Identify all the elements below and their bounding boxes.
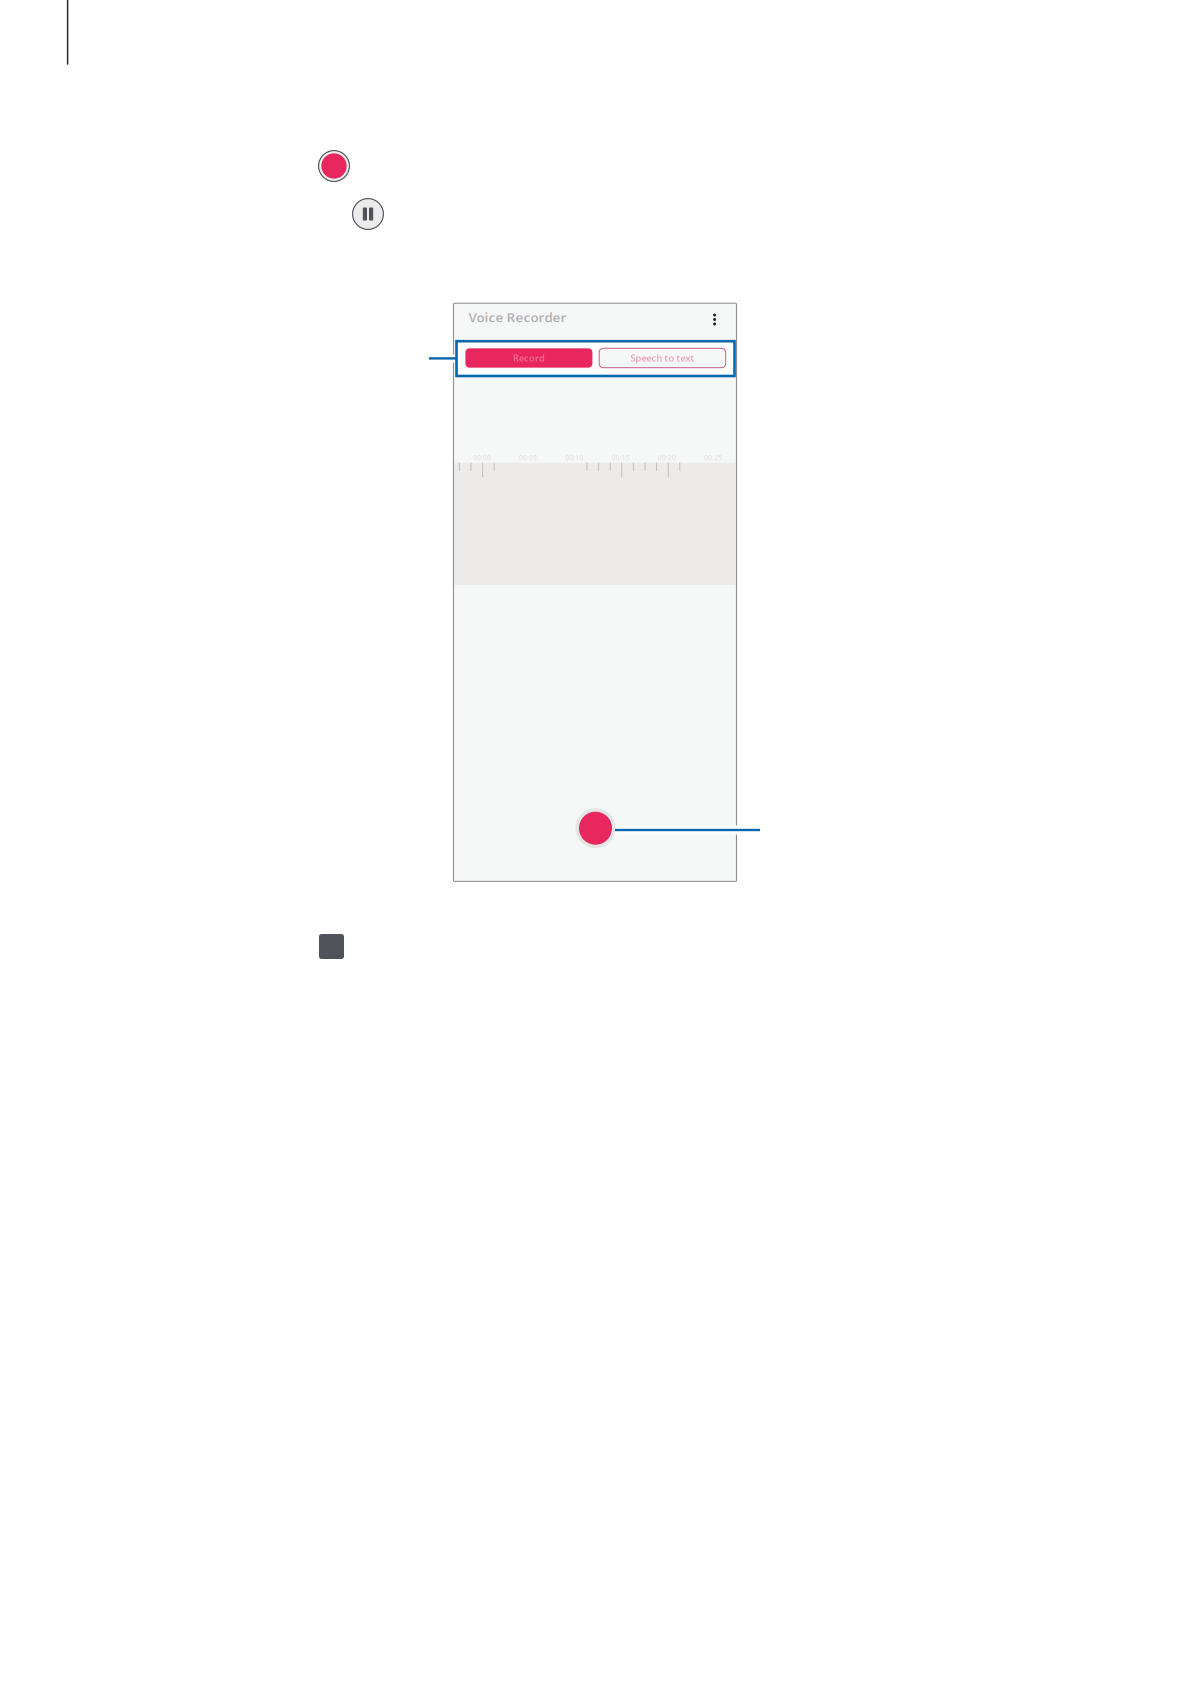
button[interactable]: Record xyxy=(575,808,615,848)
button[interactable]: More options xyxy=(702,306,728,332)
staticText: 00:15 xyxy=(611,453,629,462)
staticText: 00:10 xyxy=(565,453,583,462)
staticText: Voice Recorder xyxy=(468,308,566,326)
staticText: 00:05 xyxy=(519,453,537,462)
staticText: 00:20 xyxy=(658,453,676,462)
staticText: 00:00 xyxy=(473,453,491,462)
staticText: Speech to text xyxy=(630,352,694,364)
staticText: 00:25 xyxy=(704,453,722,462)
button[interactable]: Record xyxy=(465,348,592,368)
staticText: Record xyxy=(513,352,545,364)
button[interactable]: Speech to text xyxy=(599,348,726,368)
